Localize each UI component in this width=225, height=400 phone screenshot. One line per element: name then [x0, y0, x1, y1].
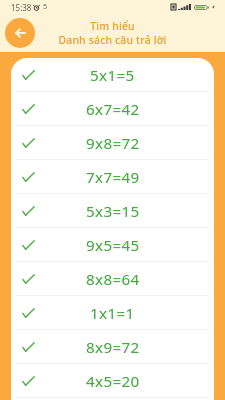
button[interactable]: 5x3=15: [11, 194, 214, 228]
button[interactable]: 8x9=72: [11, 330, 214, 364]
staticText: 6x7=42: [86, 99, 140, 120]
button[interactable]: 6x7=42: [11, 92, 214, 126]
staticText: 5: [43, 2, 48, 12]
button[interactable]: 4x5=20: [11, 364, 214, 398]
button[interactable]: 5x1=5: [11, 58, 214, 92]
staticText: 4x5=20: [86, 371, 140, 392]
staticText: 9x8=72: [86, 133, 140, 154]
button[interactable]: 9x5=45: [11, 228, 214, 262]
staticText: 8x9=72: [86, 337, 140, 358]
staticText: 8x8=64: [86, 269, 140, 290]
button[interactable]: 1x1=1: [11, 296, 214, 330]
staticText: 15:38: [11, 2, 32, 13]
staticText: Tìm hiểu: [90, 19, 135, 33]
staticText: 1x1=1: [90, 303, 135, 324]
staticText: 7x7=49: [86, 167, 140, 188]
staticText: 9x5=45: [86, 235, 140, 256]
button[interactable]: 7x7=49: [11, 160, 214, 194]
button[interactable]: Back: [5, 18, 35, 48]
staticText: 5x1=5: [90, 65, 135, 86]
button[interactable]: 8x8=64: [11, 262, 214, 296]
staticText: 5x3=15: [86, 201, 140, 222]
staticText: Danh sách câu trả lời: [58, 33, 167, 47]
button[interactable]: 9x8=72: [11, 126, 214, 160]
